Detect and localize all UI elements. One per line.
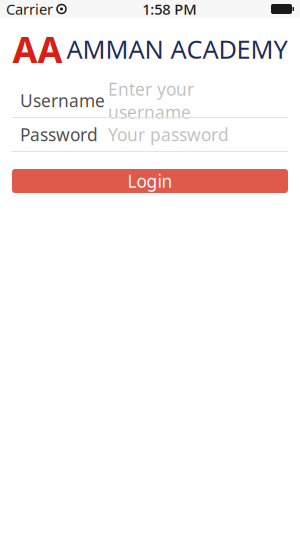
staticText: Enter your username	[108, 77, 194, 123]
button[interactable]: Username	[0, 84, 300, 117]
staticText: Login	[127, 169, 172, 192]
staticText: Your password	[108, 123, 229, 146]
button[interactable]: Login	[12, 169, 288, 193]
staticText: Carrier	[6, 0, 53, 19]
staticText: Password	[20, 123, 98, 146]
staticText: Username	[20, 89, 105, 112]
staticText	[53, 1, 56, 17]
button[interactable]: Password	[0, 118, 300, 151]
staticText: AA	[12, 25, 62, 73]
staticText: AMMAN ACADEMY	[66, 32, 287, 66]
staticText: 1:58 PM	[142, 0, 196, 19]
